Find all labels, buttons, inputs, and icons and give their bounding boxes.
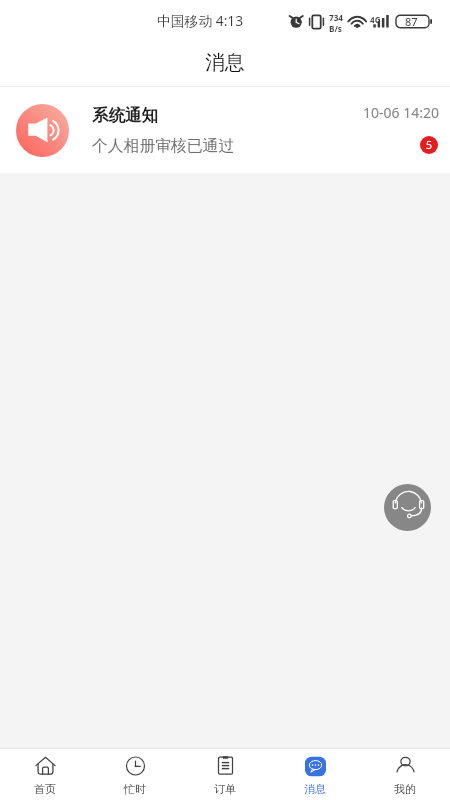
staticText: 消息 <box>205 50 245 75</box>
staticText: 个人相册审核已通过 <box>92 136 235 156</box>
staticText: 4G <box>370 14 381 25</box>
staticText: 87 <box>405 14 418 29</box>
button[interactable]: 系统通知 <box>0 87 450 173</box>
staticText: B/s <box>329 23 342 34</box>
button[interactable]: 我的 <box>360 749 450 800</box>
staticText: 首页 <box>34 782 56 796</box>
staticText: 5 <box>426 138 433 152</box>
staticText: 中国移动 4:13 <box>157 11 244 30</box>
button[interactable]: 订单 <box>180 749 270 800</box>
button[interactable]: 忙时 <box>90 749 180 800</box>
staticText: 系统通知 <box>92 105 158 126</box>
staticText: 我的 <box>394 782 416 796</box>
button[interactable]: 首页 <box>0 749 90 800</box>
staticText: 10-06 14:20 <box>363 103 439 122</box>
button[interactable]: Customer service <box>384 484 431 531</box>
button[interactable]: 消息 <box>270 749 360 800</box>
staticText: 消息 <box>304 782 326 796</box>
staticText: 订单 <box>214 782 236 796</box>
staticText: 734 <box>329 12 344 23</box>
staticText: 忙时 <box>124 782 146 796</box>
